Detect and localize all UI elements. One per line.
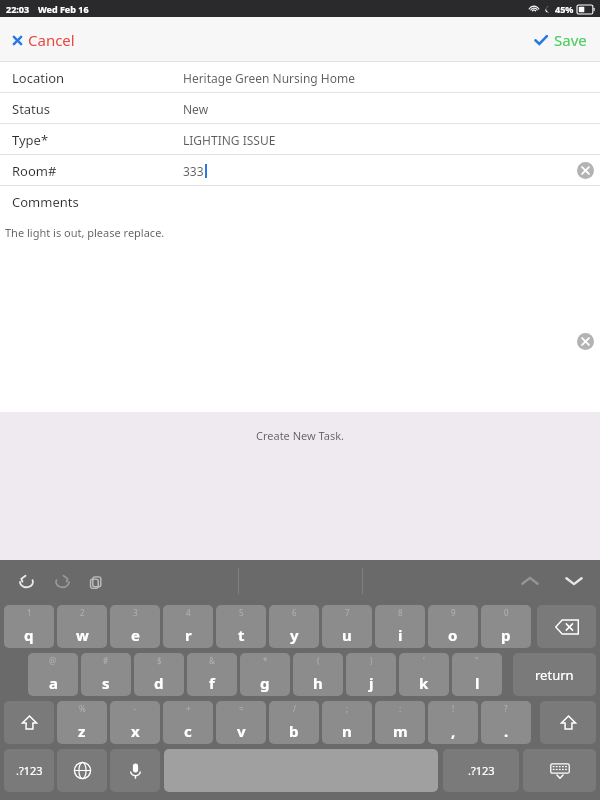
button[interactable]: ; <box>322 701 372 744</box>
button[interactable]: .?123 <box>4 749 54 792</box>
button[interactable]: .?123 <box>443 749 519 792</box>
button[interactable]: 4 <box>163 605 213 648</box>
button[interactable]: ' <box>399 653 449 696</box>
button[interactable]: Redo <box>54 573 71 590</box>
button[interactable]: Cancel <box>11 30 75 50</box>
button[interactable]: Shift <box>540 701 596 744</box>
staticText: d <box>154 673 164 693</box>
button[interactable]: Paste <box>88 574 104 590</box>
button[interactable]: Type* <box>0 124 600 155</box>
staticText: j <box>369 673 374 693</box>
staticText: ) <box>370 655 373 666</box>
button[interactable]: Next field <box>564 574 584 588</box>
button[interactable]: " <box>452 653 502 696</box>
button[interactable]: 5 <box>216 605 266 648</box>
staticText: ? <box>504 703 508 714</box>
staticText: , <box>451 721 456 741</box>
button[interactable]: * <box>240 653 290 696</box>
staticText: The light is out, please replace. <box>5 225 165 240</box>
staticText: 3 <box>133 607 138 618</box>
staticText: . <box>504 721 509 741</box>
staticText: Save <box>554 30 587 50</box>
staticText: m <box>393 721 408 741</box>
button[interactable]: Shift <box>4 701 54 744</box>
button[interactable]: 7 <box>322 605 372 648</box>
button[interactable]: - <box>110 701 160 744</box>
staticText: Heritage Green Nursing Home <box>183 70 355 86</box>
staticText: 5 <box>239 607 244 618</box>
button[interactable]: 3 <box>110 605 160 648</box>
staticText: x <box>131 721 140 741</box>
button[interactable]: $ <box>134 653 184 696</box>
button[interactable]: / <box>269 701 319 744</box>
staticText: ( <box>317 655 320 666</box>
staticText: l <box>475 673 480 693</box>
staticText: t <box>238 625 245 645</box>
staticText: ' <box>423 655 425 666</box>
button[interactable]: 6 <box>269 605 319 648</box>
button[interactable]: Change language <box>57 749 107 792</box>
button[interactable]: : <box>375 701 425 744</box>
staticText: Status <box>12 100 51 118</box>
staticText: Wed Feb 16 <box>38 3 89 15</box>
staticText: v <box>237 721 246 741</box>
button[interactable]: ( <box>293 653 343 696</box>
staticText: " <box>475 655 479 666</box>
staticText: 1 <box>27 607 32 618</box>
staticText: Comments <box>12 193 79 211</box>
button[interactable]: 1 <box>4 605 54 648</box>
button[interactable]: ! <box>428 701 478 744</box>
staticText: & <box>209 655 215 666</box>
staticText: a <box>49 673 58 693</box>
staticText: .?123 <box>468 763 495 778</box>
button[interactable]: return <box>513 653 596 696</box>
staticText: b <box>289 721 299 741</box>
button[interactable]: 9 <box>428 605 478 648</box>
button[interactable]: Room# <box>0 155 600 186</box>
button[interactable]: + <box>163 701 213 744</box>
button[interactable]: Backspace <box>537 605 596 648</box>
staticText: c <box>184 721 192 741</box>
button[interactable]: 0 <box>481 605 531 648</box>
staticText: i <box>398 625 403 645</box>
button[interactable]: Hide keyboard <box>523 749 596 792</box>
staticText: y <box>290 625 299 645</box>
staticText: .?123 <box>16 763 43 778</box>
staticText: ! <box>452 703 455 714</box>
staticText: : <box>399 703 402 714</box>
button[interactable]: Undo <box>18 573 35 590</box>
button[interactable]: ) <box>346 653 396 696</box>
button[interactable]: % <box>57 701 107 744</box>
button[interactable]: = <box>216 701 266 744</box>
staticText: Cancel <box>28 30 75 50</box>
staticText: New <box>183 101 209 117</box>
button[interactable]: @ <box>28 653 78 696</box>
staticText: 7 <box>345 607 350 618</box>
staticText: - <box>134 703 137 714</box>
button[interactable]: Save <box>534 30 587 50</box>
button[interactable]: Previous field <box>520 574 540 588</box>
staticText: q <box>24 625 34 645</box>
staticText: $ <box>157 655 162 666</box>
button[interactable]: Status <box>0 93 600 124</box>
staticText: Location <box>12 69 65 87</box>
button[interactable]: ? <box>481 701 531 744</box>
button[interactable]: 2 <box>57 605 107 648</box>
button[interactable]: & <box>187 653 237 696</box>
staticText: k <box>419 673 429 693</box>
staticText: w <box>76 625 89 645</box>
button[interactable]: # <box>81 653 131 696</box>
button[interactable]: 8 <box>375 605 425 648</box>
staticText: e <box>131 625 140 645</box>
staticText: 45% <box>555 3 574 15</box>
staticText: h <box>313 673 323 693</box>
staticText: 8 <box>398 607 403 618</box>
button[interactable]: Clear <box>577 333 594 350</box>
button[interactable]: Voice input <box>110 749 160 792</box>
staticText: LIGHTING ISSUE <box>183 132 276 148</box>
button[interactable]: Clear <box>577 162 594 179</box>
staticText: # <box>103 655 109 666</box>
staticText: 333 <box>183 163 204 179</box>
button[interactable]: Location <box>0 62 600 93</box>
